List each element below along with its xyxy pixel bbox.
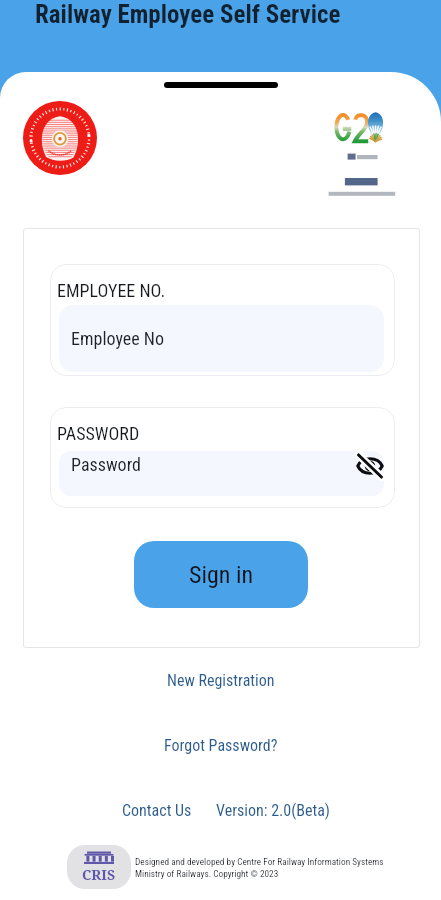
staticText: Railway Employee Self Service [35,0,341,29]
staticText: Sign in [189,561,254,589]
staticText: CRIS [82,865,116,884]
staticText: Forgot Password? [164,736,278,755]
button[interactable]: New Registration [153,665,289,696]
button[interactable]: Show password [355,451,384,481]
staticText: Employee No [71,328,164,349]
button[interactable]: Password [59,451,384,496]
button[interactable]: Employee No [59,305,384,372]
staticText: Contact Us [122,801,192,820]
staticText: Version: 2.0(Beta) [216,801,330,820]
staticText: Password [71,454,141,475]
button[interactable]: Forgot Password? [150,730,292,761]
staticText: Designed and developed by Centre For Rai… [135,856,384,867]
staticText: New Registration [167,671,275,690]
button[interactable]: Sign in [134,541,308,608]
staticText: PASSWORD [57,423,140,444]
staticText: EMPLOYEE NO. [57,280,166,301]
button[interactable]: Contact Us [112,795,202,826]
staticText: Ministry of Railways. Copyright © 2023 [135,868,279,879]
